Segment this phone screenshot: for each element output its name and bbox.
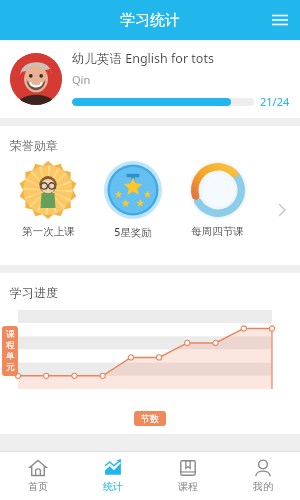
button[interactable]: 我的: [225, 452, 300, 500]
button[interactable]: Avatar: [10, 53, 62, 105]
staticText: 荣誉勋章: [10, 138, 58, 153]
staticText: 幼儿英语 English for tots: [72, 50, 214, 67]
staticText: 每周四节课: [191, 225, 244, 238]
staticText: 我的: [253, 480, 273, 493]
staticText: 课: [6, 329, 15, 340]
button[interactable]: More badges: [270, 198, 294, 222]
staticText: 节数: [141, 413, 159, 424]
staticText: 课程: [178, 480, 198, 493]
button[interactable]: 5星奖励: [90, 155, 175, 239]
staticText: 元: [6, 362, 15, 373]
button[interactable]: 首页: [0, 452, 75, 500]
staticText: 统计: [103, 480, 123, 493]
staticText: 学习进度: [10, 285, 58, 300]
button[interactable]: 统计: [75, 452, 150, 500]
button[interactable]: Menu: [260, 0, 300, 40]
staticText: 首页: [28, 480, 48, 493]
staticText: 学习统计: [120, 11, 180, 30]
staticText: 21/24: [260, 94, 290, 109]
button[interactable]: 每周四节课: [175, 155, 260, 238]
staticText: 5星奖励: [114, 225, 152, 239]
button[interactable]: 课程: [150, 452, 225, 500]
staticText: 程: [6, 340, 15, 351]
staticText: 单: [6, 351, 15, 362]
staticText: 第一次上课: [22, 225, 75, 238]
button[interactable]: 第一次上课: [6, 155, 90, 238]
staticText: Qin: [72, 72, 91, 87]
